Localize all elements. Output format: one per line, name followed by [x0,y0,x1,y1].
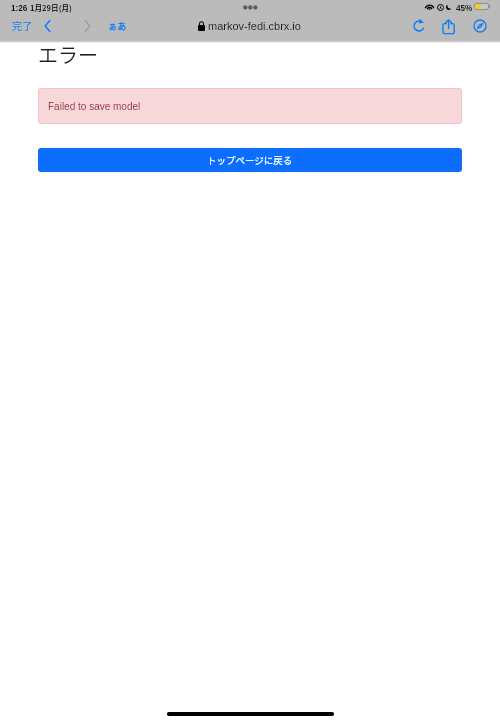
staticText: Failed to save model [48,101,141,112]
button[interactable]: Back [39,17,57,35]
button[interactable]: ぁあ [103,17,132,34]
button[interactable]: Forward [78,17,96,35]
staticText: 1月29日(月) [30,2,72,13]
staticText: 1:26 [11,4,28,13]
button[interactable]: Open in Safari [471,17,489,35]
button[interactable]: トップページに戻る [38,148,462,172]
staticText: 45% [456,4,473,13]
staticText: 完了 [12,18,33,33]
button[interactable]: Share [441,17,459,35]
button[interactable]: Reload [410,17,428,35]
staticText: トップページに戻る [207,153,293,167]
staticText: ぁあ [108,19,127,32]
staticText: エラー [38,40,98,69]
button[interactable]: 完了 [6,16,39,35]
staticText: markov-fedi.cbrx.io [208,20,301,32]
